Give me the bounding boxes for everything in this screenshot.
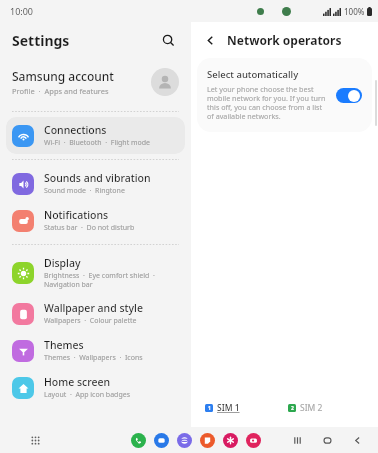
button[interactable]: Messages bbox=[154, 433, 169, 448]
staticText: Let your phone choose the best mobile ne… bbox=[207, 84, 328, 122]
staticText: 10:00 bbox=[10, 5, 34, 17]
staticText: Themes · Wallpapers · Icons bbox=[44, 353, 143, 363]
button[interactable]: Home bbox=[316, 429, 338, 451]
staticText: Wallpaper and style bbox=[44, 301, 143, 315]
staticText: Samsung account bbox=[12, 68, 114, 84]
staticText: Display bbox=[44, 256, 81, 270]
button[interactable]: Internet bbox=[177, 433, 192, 448]
button[interactable]: Select automatically bbox=[197, 58, 372, 132]
staticText: Profile · Apps and features bbox=[12, 86, 109, 96]
button[interactable]: Apps bbox=[26, 431, 44, 449]
staticText: Themes bbox=[44, 338, 84, 352]
staticText: 2 bbox=[291, 405, 294, 412]
staticText: 1 bbox=[208, 405, 211, 412]
staticText: Layout · App icon badges bbox=[44, 390, 131, 400]
button[interactable]: 1 bbox=[205, 402, 240, 414]
button[interactable]: Camera bbox=[246, 433, 261, 448]
button[interactable]: Select automatically toggle bbox=[336, 88, 362, 103]
staticText: Wi-Fi · Bluetooth · Flight mode bbox=[44, 138, 151, 148]
button[interactable]: Sounds and vibration bbox=[6, 165, 185, 202]
button[interactable]: Recents bbox=[286, 429, 308, 451]
button[interactable]: Search bbox=[155, 27, 181, 53]
staticText: Brightness · Eye comfort shield · Naviga… bbox=[44, 271, 155, 289]
button[interactable]: Gallery bbox=[223, 433, 238, 448]
button[interactable]: Themes bbox=[6, 332, 185, 369]
button[interactable]: Samsung account bbox=[0, 58, 191, 106]
staticText: Home screen bbox=[44, 375, 111, 389]
button[interactable]: Back bbox=[346, 429, 368, 451]
button[interactable]: Phone bbox=[131, 433, 146, 448]
staticText: Connections bbox=[44, 123, 107, 137]
staticText: Sound mode · Ringtone bbox=[44, 186, 125, 196]
staticText: Sounds and vibration bbox=[44, 171, 151, 185]
staticText: Status bar · Do not disturb bbox=[44, 223, 135, 233]
button[interactable]: Notes bbox=[200, 433, 215, 448]
staticText: Settings bbox=[12, 31, 70, 50]
button[interactable]: Notifications bbox=[6, 202, 185, 239]
button[interactable]: Display bbox=[6, 250, 185, 295]
button[interactable]: Connections bbox=[6, 117, 185, 154]
staticText: Notifications bbox=[44, 208, 109, 222]
button[interactable]: Back bbox=[199, 29, 221, 51]
staticText: SIM 1 bbox=[217, 402, 240, 414]
staticText: SIM 2 bbox=[300, 402, 323, 414]
button[interactable]: Wallpaper and style bbox=[6, 295, 185, 332]
button[interactable]: 2 bbox=[288, 402, 323, 414]
staticText: 100% bbox=[344, 6, 365, 17]
staticText: Network operators bbox=[227, 32, 342, 48]
staticText: Wallpapers · Colour palette bbox=[44, 316, 137, 326]
button[interactable]: Home screen bbox=[6, 369, 185, 406]
staticText: Select automatically bbox=[207, 68, 299, 81]
